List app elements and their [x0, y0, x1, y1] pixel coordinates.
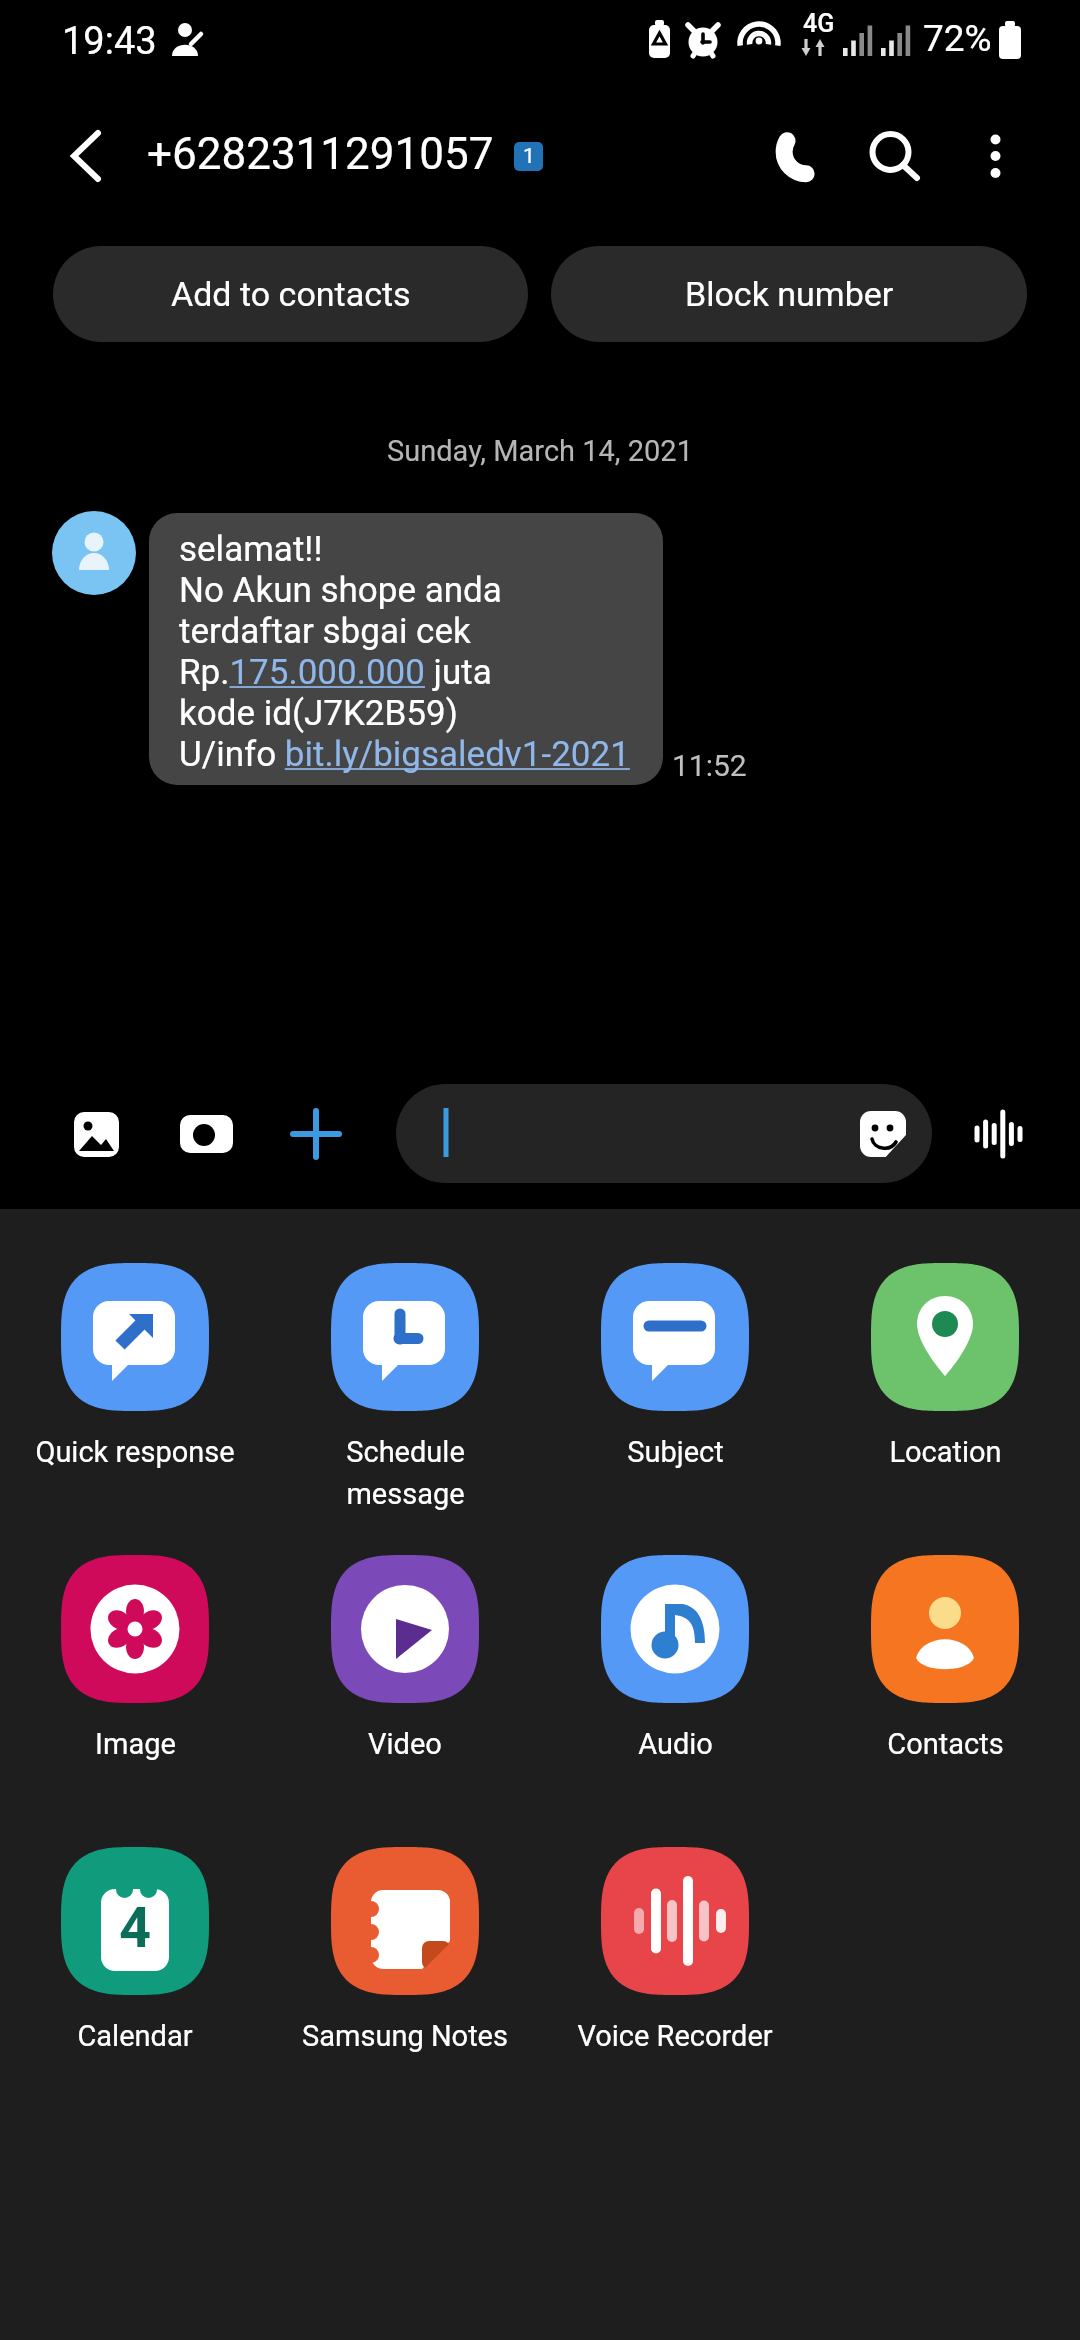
staticText: 11:52 — [672, 748, 747, 783]
staticText: 1 — [523, 144, 535, 169]
button[interactable]: Camera — [180, 1115, 233, 1153]
staticText: Samsung Notes — [302, 2019, 508, 2053]
staticText: Quick response — [35, 1435, 235, 1469]
button[interactable]: Schedule message — [270, 1263, 540, 1511]
staticText: Audio — [638, 1727, 713, 1761]
button[interactable]: More options — [989, 133, 1003, 179]
staticText: +6282311291057 — [147, 128, 494, 180]
staticText: Sunday, March 14, 2021 — [387, 434, 693, 468]
button[interactable] — [396, 1084, 932, 1183]
button[interactable]: Video — [270, 1555, 540, 1761]
button[interactable]: Quick response — [0, 1263, 270, 1469]
staticText: 19:43 — [62, 19, 157, 64]
button[interactable]: Back — [48, 117, 126, 195]
button[interactable]: 4 — [0, 1847, 270, 2053]
staticText: Location — [889, 1435, 1002, 1469]
button[interactable]: Contacts — [810, 1555, 1080, 1761]
button[interactable]: Gallery — [74, 1112, 119, 1157]
staticText: 72% — [923, 17, 992, 60]
button[interactable]: Audio — [540, 1555, 810, 1761]
button[interactable]: Add to contacts — [53, 246, 528, 342]
button[interactable]: Block number — [551, 246, 1027, 342]
button[interactable]: Image — [0, 1555, 270, 1761]
staticText: 4G — [803, 9, 835, 38]
staticText: Schedule message — [346, 1435, 465, 1511]
button[interactable]: Subject — [540, 1263, 810, 1469]
staticText: 4 — [119, 1895, 152, 1961]
button[interactable]: Call — [769, 133, 817, 181]
button[interactable]: Voice input — [974, 1110, 1023, 1159]
button[interactable]: Add attachment — [292, 1110, 340, 1158]
button[interactable]: Search — [869, 131, 921, 183]
staticText: selamat!! No Akun shope anda terdaftar s… — [179, 529, 630, 775]
staticText: Calendar — [77, 2019, 193, 2053]
button[interactable]: Samsung Notes — [270, 1847, 540, 2053]
button[interactable]: Stickers — [860, 1111, 906, 1157]
staticText: Subject — [627, 1435, 724, 1469]
button[interactable]: Location — [810, 1263, 1080, 1469]
staticText: Image — [95, 1727, 176, 1761]
button[interactable]: selamat!! No Akun shope anda terdaftar s… — [149, 513, 663, 785]
staticText: Voice Recorder — [577, 2019, 773, 2053]
button[interactable]: Voice Recorder — [540, 1847, 810, 2053]
staticText: Contacts — [887, 1727, 1004, 1761]
staticText: Block number — [685, 274, 894, 314]
staticText: Add to contacts — [171, 274, 411, 314]
staticText: Video — [368, 1727, 442, 1761]
